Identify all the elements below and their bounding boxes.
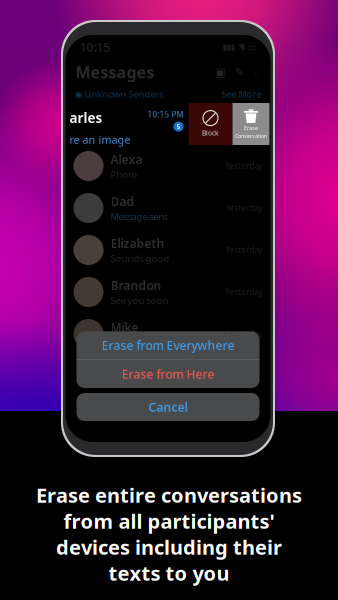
- staticText: ▮▮▮: [222, 42, 234, 52]
- button[interactable]: Cancel: [76, 393, 259, 421]
- button[interactable]: Brandon: [65, 271, 270, 313]
- button[interactable]: Erase from Everywhere: [76, 331, 259, 359]
- staticText: texts to you: [108, 560, 229, 586]
- staticText: Erase from Everywhere: [101, 337, 234, 353]
- staticText: 10:15 PM: [147, 109, 183, 120]
- staticText: ▣: [214, 65, 225, 79]
- staticText: 10:15: [79, 39, 110, 55]
- staticText: arles: [69, 109, 102, 127]
- staticText: ▭: [247, 42, 256, 52]
- staticText: Yesterday: [225, 287, 262, 297]
- button[interactable]: Erase from Here: [76, 360, 259, 388]
- button[interactable]: Block: [188, 103, 232, 145]
- button[interactable]: Elizabeth: [65, 229, 270, 271]
- staticText: Erase from Here: [121, 366, 214, 382]
- button[interactable]: Alexa: [65, 145, 270, 187]
- staticText: Yesterday: [225, 203, 262, 213]
- staticText: from all participants': [63, 508, 274, 534]
- button[interactable]: Erase: [232, 103, 269, 145]
- staticText: See you soon: [110, 294, 168, 307]
- staticText: Yesterday: [225, 329, 262, 339]
- staticText: Alexa: [110, 151, 142, 167]
- staticText: ◥: [237, 42, 244, 52]
- staticText: Photo: [110, 168, 137, 181]
- staticText: Yesterday: [225, 161, 262, 171]
- staticText: Yesterday: [225, 245, 262, 255]
- staticText: Messages: [75, 61, 154, 83]
- staticText: Erase: [244, 124, 258, 131]
- staticText: devices including their: [56, 534, 282, 560]
- button[interactable]: Dad: [65, 187, 270, 229]
- staticText: ◉ Unknown Senders: [74, 88, 163, 100]
- staticText: re an image: [69, 133, 130, 147]
- staticText: Message sent: [110, 210, 167, 223]
- staticText: ✎: [234, 65, 244, 79]
- staticText: Elizabeth: [110, 235, 164, 251]
- staticText: Ok: [110, 336, 122, 349]
- staticText: Conversation: [235, 132, 267, 140]
- staticText: Mike: [110, 319, 138, 335]
- staticText: 5: [176, 122, 180, 131]
- staticText: Brandon: [110, 277, 161, 293]
- staticText: Sounds good: [110, 252, 169, 265]
- staticText: Erase entire conversations: [36, 482, 302, 508]
- staticText: Block: [202, 129, 219, 137]
- staticText: Dad: [110, 193, 134, 209]
- button[interactable]: Mike: [65, 313, 270, 355]
- staticText: Cancel: [148, 399, 187, 415]
- staticText: See More: [221, 88, 261, 100]
- staticText: ◌: [253, 64, 260, 80]
